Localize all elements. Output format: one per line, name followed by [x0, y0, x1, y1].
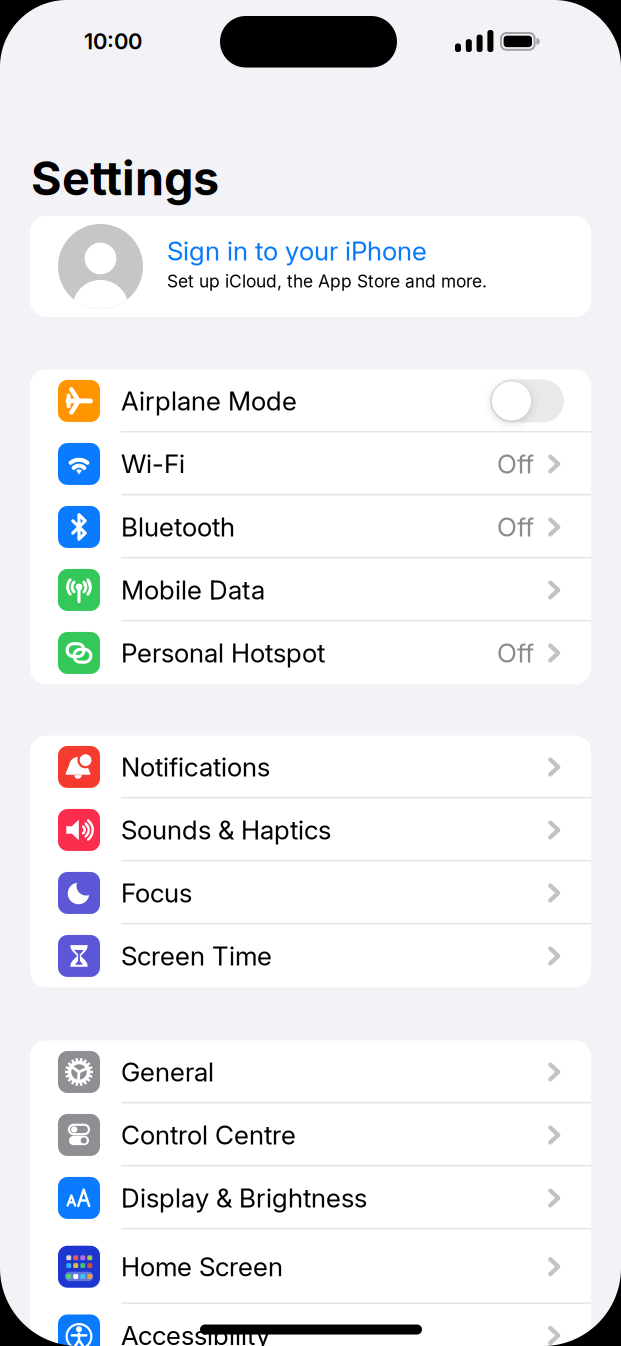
staticText: Personal Hotspot	[121, 637, 325, 669]
button[interactable]: Accessibility	[30, 1304, 591, 1346]
button[interactable]: Mobile Data	[30, 558, 591, 621]
button[interactable]: Screen Time	[30, 924, 591, 987]
button[interactable]: Sounds & Haptics	[30, 798, 591, 861]
button[interactable]: Home Screen	[30, 1229, 591, 1304]
staticText: Display & Brightness	[121, 1182, 367, 1214]
staticText: General	[121, 1056, 214, 1088]
button[interactable]: Display & Brightness	[30, 1166, 591, 1229]
staticText: Screen Time	[121, 940, 272, 972]
button[interactable]: Sign in to your iPhone	[30, 216, 591, 317]
staticText: Accessibility	[121, 1320, 270, 1346]
staticText: Wi-Fi	[121, 448, 185, 480]
staticText: Off	[497, 637, 534, 669]
staticText: Control Centre	[121, 1119, 296, 1151]
staticText: Settings	[31, 150, 219, 206]
staticText: Sign in to your iPhone	[167, 235, 427, 267]
staticText: Set up iCloud, the App Store and more.	[167, 271, 487, 292]
button[interactable]: Airplane Mode	[30, 369, 591, 432]
button[interactable]: Control Centre	[30, 1103, 591, 1166]
button[interactable]: Bluetooth	[30, 495, 591, 558]
staticText: Off	[497, 448, 534, 480]
staticText: Sounds & Haptics	[121, 814, 331, 846]
staticText: Off	[497, 511, 534, 543]
button[interactable]: Focus	[30, 861, 591, 924]
staticText: Notifications	[121, 751, 270, 783]
staticText: Mobile Data	[121, 574, 265, 606]
staticText: Home Screen	[121, 1251, 283, 1282]
button[interactable]: Personal Hotspot	[30, 621, 591, 684]
button[interactable]: Notifications	[30, 735, 591, 798]
staticText: Airplane Mode	[121, 385, 297, 417]
button[interactable]: General	[30, 1040, 591, 1103]
staticText: Focus	[121, 877, 192, 909]
button[interactable]: Wi-Fi	[30, 432, 591, 495]
staticText: 10:00	[84, 28, 142, 55]
staticText: Bluetooth	[121, 511, 235, 543]
